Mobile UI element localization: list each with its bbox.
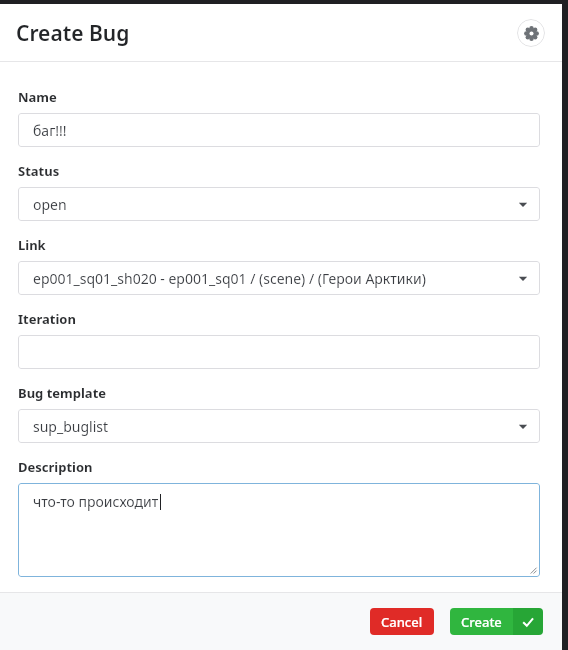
other: Confirm	[513, 608, 543, 635]
staticText: Description	[18, 458, 93, 476]
staticText: баг!!!	[33, 121, 67, 140]
button[interactable]	[18, 335, 540, 369]
staticText: Create	[461, 613, 502, 631]
staticText: Name	[18, 88, 57, 106]
staticText: Link	[18, 236, 46, 254]
staticText: что-то происходит	[33, 492, 159, 511]
button[interactable]: ep001_sq01_sh020 - ep001_sq01 / (scene) …	[18, 261, 540, 295]
staticText: Status	[18, 162, 60, 180]
button[interactable]: Settings	[517, 19, 545, 47]
button[interactable]: sup_buglist	[18, 409, 540, 443]
button[interactable]: баг!!!	[18, 113, 540, 147]
staticText: open	[33, 195, 67, 214]
staticText: Bug template	[18, 384, 107, 402]
button[interactable]: Create	[450, 608, 543, 635]
staticText: Create Bug	[16, 19, 130, 48]
staticText: Iteration	[18, 310, 76, 328]
button[interactable]: что-то происходит	[18, 483, 540, 577]
button[interactable]: Cancel	[370, 608, 434, 635]
button[interactable]: open	[18, 187, 540, 221]
staticText: Cancel	[381, 613, 423, 631]
staticText: sup_buglist	[33, 417, 109, 436]
staticText: ep001_sq01_sh020 - ep001_sq01 / (scene) …	[33, 269, 426, 288]
